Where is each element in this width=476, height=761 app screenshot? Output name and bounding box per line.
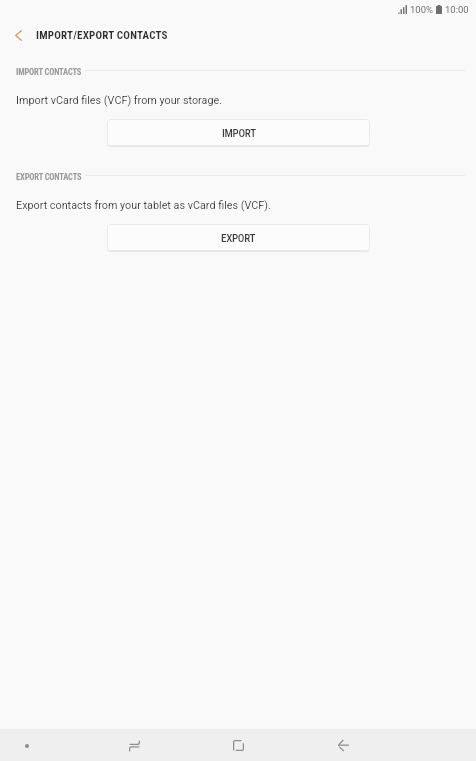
staticText: Export contacts from your tablet as vCar… [16,199,271,212]
staticText: 10:00 [445,4,469,15]
button[interactable]: Back [319,729,367,761]
button[interactable]: IMPORT [107,119,370,146]
button[interactable]: Show navigation buttons [12,729,41,761]
staticText: EXPORT [221,232,256,245]
button[interactable]: Navigate up [0,21,36,49]
staticText: IMPORT [222,127,256,140]
staticText: IMPORT/EXPORT CONTACTS [36,29,168,42]
button[interactable]: Recent apps [110,729,158,761]
staticText: EXPORT CONTACTS [16,172,82,182]
button[interactable]: EXPORT [107,224,370,251]
button[interactable]: Home [214,729,262,761]
staticText: Import vCard files (VCF) from your stora… [16,94,223,107]
staticText: 100% [410,4,433,15]
staticText: IMPORT CONTACTS [16,67,82,77]
